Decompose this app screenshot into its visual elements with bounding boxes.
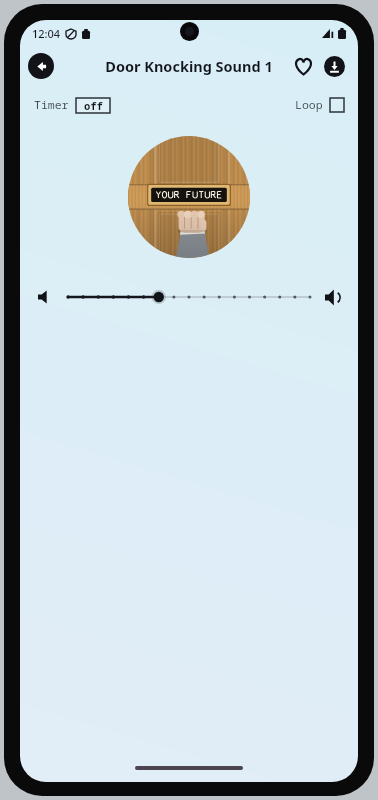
button[interactable]: Mute — [32, 284, 58, 310]
staticText: off — [84, 99, 103, 113]
button[interactable]: Timer — [34, 97, 110, 113]
staticText: 12:04 — [32, 26, 61, 41]
button[interactable]: Volume up — [320, 284, 346, 310]
button[interactable]: Door Knocking Sound artwork — [128, 136, 250, 258]
staticText: Loop — [295, 97, 323, 113]
button[interactable]: Favorite — [289, 52, 317, 80]
button[interactable]: Loop — [295, 97, 344, 113]
button[interactable]: Download — [320, 52, 348, 80]
button[interactable]: Back — [28, 53, 54, 79]
staticText: Timer — [34, 97, 69, 113]
button[interactable]: Volume — [68, 282, 310, 312]
staticText: Door Knocking Sound 1 — [105, 56, 273, 76]
